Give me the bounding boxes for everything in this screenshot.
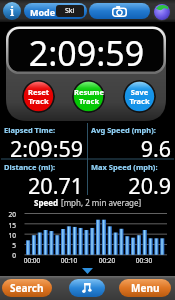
staticText: Reset Track xyxy=(28,87,49,106)
staticText: Mode xyxy=(30,6,56,18)
staticText: Elapsed Time: xyxy=(4,125,56,135)
staticText: Speed xyxy=(34,197,61,208)
staticText: 10 xyxy=(5,231,16,240)
button[interactable]: Search xyxy=(2,279,52,297)
staticText: 9.6 xyxy=(87,134,171,158)
staticText: 20 xyxy=(5,210,16,219)
button[interactable]: Music xyxy=(69,279,105,297)
button[interactable]: Resume Track xyxy=(72,80,105,113)
button[interactable]: Camera xyxy=(89,3,150,19)
staticText: Search xyxy=(10,281,44,295)
button[interactable]: Mode xyxy=(24,3,87,19)
staticText: Ski xyxy=(65,6,75,16)
staticText: i xyxy=(10,3,15,19)
staticText: Save Track xyxy=(129,87,150,106)
staticText: Resume Track xyxy=(74,87,104,106)
button[interactable]: Map xyxy=(152,2,171,21)
staticText: [mph, 2 min average] xyxy=(61,197,142,208)
button[interactable]: Menu xyxy=(119,279,171,297)
staticText: 20.9 xyxy=(87,171,171,195)
staticText: 00:10 xyxy=(55,256,83,265)
staticText: 0 xyxy=(5,251,16,260)
button[interactable]: Info xyxy=(3,2,21,20)
staticText: 5 xyxy=(5,241,16,250)
staticText: 00:20 xyxy=(93,256,121,265)
staticText: 00:00 xyxy=(18,256,46,265)
staticText: 2:09:59 xyxy=(0,134,83,158)
staticText: 20.71 xyxy=(0,171,83,195)
staticText: Distance (mi): xyxy=(4,162,56,172)
staticText: 2:09:59 xyxy=(0,30,174,76)
staticText: Avg Speed (mph): xyxy=(91,125,156,135)
button[interactable]: Save Track xyxy=(123,80,156,113)
button[interactable]: Reset Track xyxy=(22,80,55,113)
staticText: Max Speed (mph): xyxy=(91,162,158,172)
staticText: Menu xyxy=(131,281,160,295)
staticText: 15 xyxy=(5,221,16,230)
staticText: 00:30 xyxy=(130,256,158,265)
